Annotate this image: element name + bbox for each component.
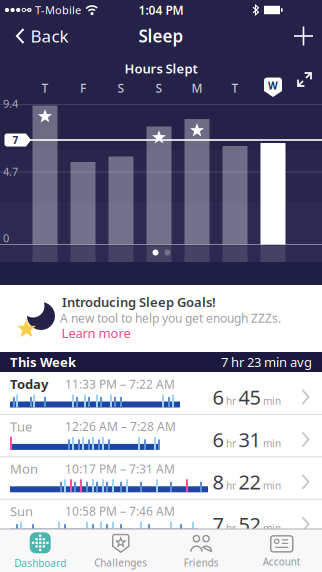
staticText: 7 [212, 511, 223, 537]
staticText: Hours Slept [124, 60, 197, 77]
staticText: 22 [238, 468, 260, 495]
staticText: Back [30, 25, 68, 47]
staticText: 52 [238, 511, 260, 537]
staticText: Dashboard [14, 556, 66, 570]
staticText: min [263, 394, 281, 407]
staticText: Introducing Sleep Goals! [62, 293, 216, 311]
button[interactable]: Dashboard [0, 530, 80, 572]
staticText: min [263, 479, 281, 492]
staticText: 7 [12, 133, 18, 147]
staticText: hr [226, 394, 236, 407]
staticText: Mon [10, 460, 38, 477]
staticText: 1:04 PM [138, 2, 183, 18]
staticText: T [41, 80, 48, 96]
staticText: 45 [238, 384, 260, 410]
button[interactable]: Today [0, 372, 322, 414]
staticText: W [268, 79, 278, 92]
button[interactable]: W [264, 77, 282, 97]
button[interactable]: Friends [161, 530, 241, 572]
staticText: 6 [212, 384, 223, 410]
button[interactable]: Mon [0, 457, 322, 499]
staticText: Sleep [138, 25, 183, 47]
staticText: 31 [238, 426, 260, 453]
staticText: Sun [10, 503, 33, 520]
staticText: Today [10, 375, 48, 393]
staticText: min [263, 521, 281, 535]
staticText: 8 [212, 468, 223, 495]
button[interactable]: Learn more [61, 324, 130, 342]
staticText: 12:26 AM – 7:28 AM [65, 418, 176, 434]
staticText: 9.4 [3, 96, 18, 111]
button[interactable]: Challenges [81, 530, 161, 572]
button[interactable]: Back [4, 21, 80, 51]
staticText: 7 hr 23 min avg [221, 353, 312, 371]
button[interactable]: Expand chart [296, 71, 313, 88]
staticText: min [263, 437, 281, 450]
staticText: hr [226, 479, 236, 492]
staticText: 4.7 [3, 164, 18, 179]
staticText: Challenges [94, 556, 147, 569]
staticText: S [117, 80, 124, 96]
button[interactable]: Add [294, 26, 313, 45]
staticText: Tue [10, 418, 32, 435]
staticText: 10:17 PM – 7:31 AM [65, 461, 175, 477]
button[interactable]: Tue [0, 414, 322, 457]
staticText: T [231, 80, 238, 96]
staticText: M [191, 80, 202, 96]
button[interactable]: Account [242, 530, 322, 572]
staticText: Account [263, 555, 301, 568]
staticText: 11:33 PM – 7:22 AM [65, 376, 175, 392]
staticText: S [155, 80, 162, 96]
staticText: hr [226, 437, 236, 450]
button[interactable]: Sun [0, 499, 322, 542]
staticText: 10:58 PM – 7:46 AM [65, 503, 175, 519]
staticText: Friends [184, 556, 219, 569]
staticText: hr [226, 521, 236, 535]
staticText: 6 [212, 426, 223, 453]
staticText: Learn more [61, 324, 130, 342]
staticText: A new tool to help you get enough ZZZs. [60, 310, 281, 326]
staticText: 0 [3, 231, 9, 245]
staticText: This Week [10, 353, 76, 371]
staticText: T-Mobile [35, 3, 81, 17]
staticText: F [80, 80, 86, 96]
